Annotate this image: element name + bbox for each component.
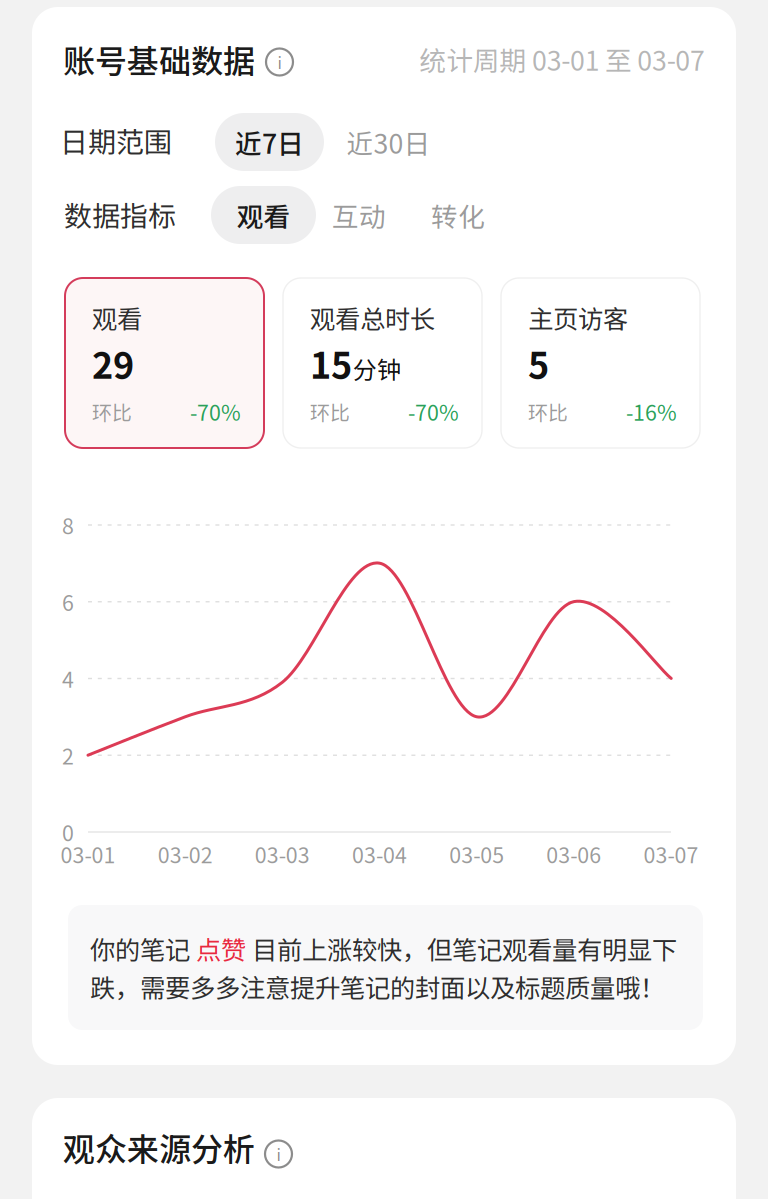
staticText: i — [276, 1142, 280, 1166]
staticText: 目前上涨较快，但笔记观看量有明显下 — [246, 930, 677, 967]
staticText: 5 — [528, 337, 549, 389]
staticText: 跌，需要多多注意提升笔记的封面以及标题质量哦！ — [90, 968, 665, 1005]
staticText: 29 — [92, 337, 134, 389]
staticText: -70% — [190, 396, 241, 427]
staticText: 统计周期 03-01 至 03-07 — [420, 40, 705, 78]
staticText: 观看 — [92, 299, 142, 336]
button[interactable]: 转化 — [415, 186, 501, 244]
staticText: 环比 — [528, 397, 568, 426]
button[interactable]: 观看总时长 — [283, 278, 482, 448]
button[interactable]: 观看 — [65, 278, 264, 448]
button[interactable]: 观众来源分析说明 — [265, 1140, 292, 1167]
staticText: 点赞 — [196, 930, 246, 967]
staticText: 0 — [62, 817, 74, 847]
staticText: 观看 — [236, 196, 290, 234]
staticText: 03-04 — [352, 839, 407, 869]
staticText: 分钟 — [353, 351, 401, 386]
staticText: 近30日 — [346, 123, 430, 161]
staticText: 03-01 — [60, 839, 115, 869]
staticText: i — [277, 50, 281, 74]
button[interactable]: 近30日 — [334, 113, 443, 171]
button[interactable]: 账号基础数据说明 — [266, 48, 293, 75]
staticText: 4 — [62, 663, 74, 694]
button[interactable]: 互动 — [316, 186, 402, 244]
staticText: 数据指标 — [64, 194, 176, 234]
staticText: -70% — [408, 396, 459, 427]
staticText: 15 — [310, 337, 352, 389]
staticText: 8 — [62, 510, 74, 540]
button[interactable]: 主页访客 — [501, 278, 700, 448]
staticText: 03-05 — [449, 839, 504, 869]
staticText: 环比 — [310, 397, 350, 426]
staticText: 03-06 — [546, 839, 601, 869]
staticText: 你的笔记 — [90, 930, 196, 967]
staticText: 03-02 — [158, 839, 213, 869]
staticText: 日期范围 — [60, 120, 172, 160]
staticText: 观众来源分析 — [63, 1124, 255, 1170]
staticText: 03-03 — [255, 839, 310, 869]
staticText: 2 — [62, 740, 74, 771]
staticText: 账号基础数据 — [63, 36, 255, 82]
staticText: 03-07 — [643, 839, 698, 869]
staticText: 环比 — [92, 397, 132, 426]
staticText: -16% — [626, 396, 677, 427]
staticText: 观看总时长 — [310, 299, 435, 336]
staticText: 主页访客 — [528, 299, 628, 336]
staticText: 互动 — [332, 196, 386, 234]
button[interactable]: 观看 — [211, 186, 316, 244]
staticText: 转化 — [431, 196, 485, 234]
staticText: 6 — [62, 586, 74, 617]
staticText: 近7日 — [235, 123, 304, 161]
button[interactable]: 近7日 — [215, 113, 324, 171]
